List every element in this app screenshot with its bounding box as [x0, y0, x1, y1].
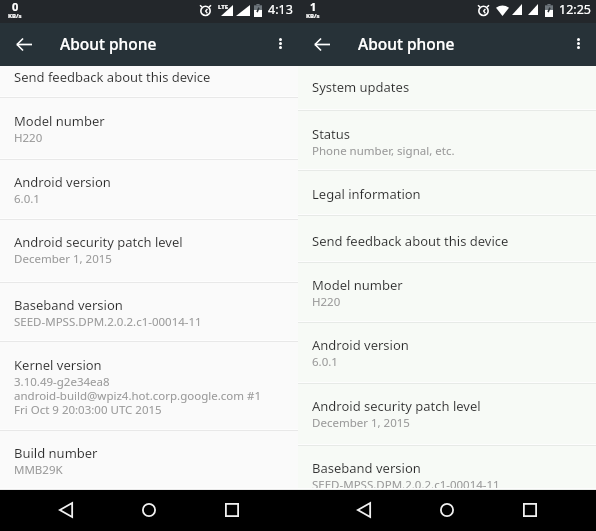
staticText: December 1, 2015 — [312, 415, 410, 431]
staticText: H220 — [312, 294, 341, 310]
staticText: MMB29K — [14, 462, 63, 478]
button[interactable]: Back — [298, 23, 346, 66]
staticText: android-build@wpiz4.hot.corp.google.com … — [14, 388, 262, 404]
button[interactable]: Model number — [298, 263, 596, 321]
staticText: Fri Oct 9 20:03:00 UTC 2015 — [14, 402, 162, 418]
staticText: About phone — [60, 33, 157, 54]
button[interactable]: Home — [125, 490, 173, 531]
button[interactable]: Send feedback about this device — [0, 66, 298, 96]
button[interactable]: Android security patch level — [298, 384, 596, 444]
staticText: SEED-MPSS.DPM.2.0.2.c1-00014-11 — [14, 314, 202, 330]
staticText: KB/s — [306, 12, 320, 20]
staticText: Build number — [14, 444, 98, 462]
staticText: Legal information — [312, 185, 421, 203]
staticText: December 1, 2015 — [14, 251, 112, 267]
staticText: 4:13 — [268, 1, 293, 18]
button[interactable]: Build number — [0, 431, 298, 488]
staticText: 6.0.1 — [14, 191, 40, 207]
button[interactable]: Android version — [298, 323, 596, 382]
staticText: Model number — [14, 112, 105, 130]
staticText: 0 — [12, 0, 19, 14]
button[interactable]: Back — [0, 23, 48, 66]
staticText: 1 — [310, 0, 317, 14]
button[interactable]: More options — [262, 23, 298, 66]
staticText: LTE — [218, 3, 229, 11]
button[interactable]: Android version — [0, 160, 298, 218]
button[interactable]: Home — [423, 490, 471, 531]
button[interactable]: System updates — [298, 66, 596, 109]
button[interactable]: Baseband version — [0, 283, 298, 340]
button[interactable]: Baseband version — [298, 446, 596, 488]
button[interactable]: Model number — [0, 98, 298, 158]
staticText: About phone — [358, 33, 455, 54]
staticText: 3.10.49-g2e34ea8 — [14, 374, 110, 390]
staticText: Baseband version — [14, 296, 123, 314]
button[interactable]: Status — [298, 111, 596, 169]
staticText: Android version — [312, 336, 409, 354]
button[interactable]: Legal information — [298, 171, 596, 214]
staticText: H220 — [14, 130, 43, 146]
staticText: Android security patch level — [14, 233, 183, 251]
staticText: 6.0.1 — [312, 354, 338, 370]
staticText: Send feedback about this device — [14, 68, 211, 86]
staticText: Kernel version — [14, 356, 102, 374]
staticText: System updates — [312, 78, 410, 96]
button[interactable]: Recents — [506, 490, 554, 531]
staticText: Android security patch level — [312, 397, 481, 415]
staticText: 12:25 — [559, 1, 591, 18]
staticText: Model number — [312, 276, 403, 294]
staticText: Android version — [14, 173, 111, 191]
staticText: Status — [312, 125, 351, 143]
staticText: Phone number, signal, etc. — [312, 143, 455, 159]
button[interactable]: Android security patch level — [0, 220, 298, 281]
button[interactable]: Kernel version — [0, 342, 298, 429]
button[interactable]: Back — [42, 490, 90, 531]
button[interactable]: Recents — [208, 490, 256, 531]
button[interactable]: Back — [340, 490, 388, 531]
button[interactable]: More options — [560, 23, 596, 66]
staticText: KB/s — [8, 12, 22, 20]
button[interactable]: Send feedback about this device — [298, 216, 596, 261]
staticText: Send feedback about this device — [312, 232, 509, 250]
staticText: SEED-MPSS.DPM.2.0.2.c1-00014-11 — [312, 477, 500, 493]
staticText: Baseband version — [312, 459, 421, 477]
